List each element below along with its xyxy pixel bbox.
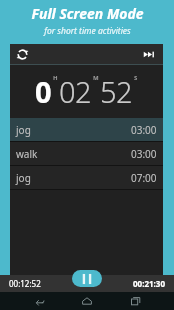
staticText: walk [16,147,38,161]
button[interactable]: walk [10,142,163,165]
staticText: for short time activities [44,25,131,37]
button[interactable]: jog [10,118,163,141]
staticText: 03:00 [131,123,157,137]
button[interactable]: Recents [125,292,147,310]
button[interactable]: Back [27,292,49,310]
staticText: 03:00 [131,147,157,161]
staticText: H [53,74,58,82]
button[interactable]: Pause [72,270,102,287]
staticText: jog [16,123,31,137]
staticText: 0 [35,72,52,111]
button[interactable]: jog [10,166,163,189]
staticText: M [93,74,99,82]
staticText: jog [16,171,31,185]
staticText: 52 [100,72,133,111]
staticText: 00:12:52 [9,278,41,289]
staticText: Full Screen Mode [31,4,144,23]
staticText: 07:00 [131,171,157,185]
staticText: 00:21:30 [133,278,165,289]
button[interactable]: Home [76,292,98,310]
button[interactable]: Loop [14,46,31,63]
button[interactable]: Skip next [141,46,158,63]
staticText: S [134,74,138,82]
staticText: 02 [59,72,92,111]
